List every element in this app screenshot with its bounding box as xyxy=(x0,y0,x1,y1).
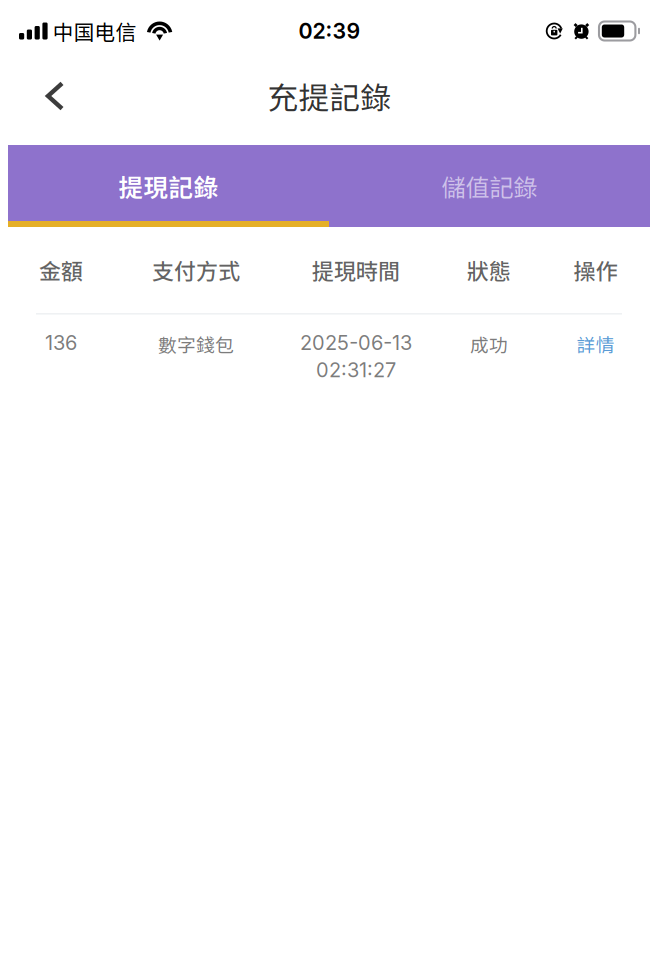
staticText: 成功 xyxy=(470,331,508,358)
staticText: 充提記錄 xyxy=(267,74,391,118)
button[interactable]: 儲值記錄 xyxy=(329,145,650,227)
staticText: 中国电信 xyxy=(53,16,137,46)
staticText: 儲值記錄 xyxy=(441,169,537,203)
button[interactable]: Back xyxy=(27,68,83,124)
button[interactable]: 詳情 xyxy=(536,331,655,358)
staticText: 操作 xyxy=(573,254,617,286)
staticText: 狀態 xyxy=(467,254,511,286)
staticText: 02:31:27 xyxy=(316,358,396,382)
staticText: 136 xyxy=(45,331,77,355)
staticText: 詳情 xyxy=(576,331,614,358)
button[interactable]: 提現記錄 xyxy=(8,145,329,227)
staticText: 支付方式 xyxy=(152,254,240,286)
staticText: 2025-06-13 xyxy=(300,331,412,355)
staticText: 02:39 xyxy=(298,18,360,44)
staticText: 金額 xyxy=(39,254,83,286)
staticText: 數字錢包 xyxy=(158,331,234,358)
staticText: 提現時間 xyxy=(312,254,400,286)
staticText: 提現記錄 xyxy=(118,168,218,204)
